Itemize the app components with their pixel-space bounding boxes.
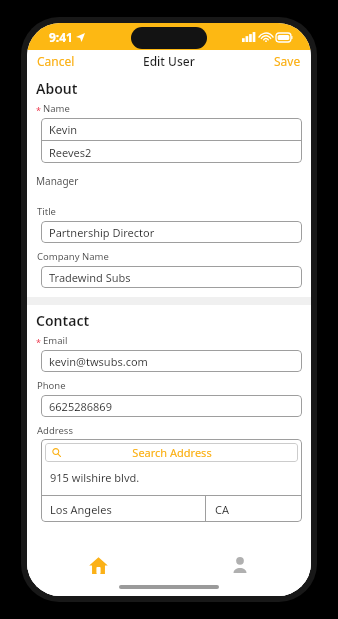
staticText: Partnership Director — [49, 225, 155, 240]
staticText: Reeves2 — [49, 145, 92, 160]
staticText: Phone — [37, 379, 66, 392]
button[interactable]: Save — [264, 51, 311, 71]
staticText: 915 wilshire blvd. — [50, 470, 140, 485]
staticText: 6625286869 — [49, 399, 112, 414]
staticText: Address — [37, 424, 73, 437]
staticText: Name — [43, 102, 70, 115]
staticText: About — [36, 79, 78, 98]
staticText: Manager — [36, 174, 79, 188]
button[interactable]: Home — [27, 548, 169, 582]
button[interactable]: kevin@twsubs.com — [41, 350, 302, 372]
staticText: Los Angeles — [50, 502, 112, 517]
button[interactable]: Tradewind Subs — [41, 266, 302, 288]
button[interactable]: Kevin — [41, 118, 302, 140]
staticText: Save — [274, 53, 301, 69]
staticText: Contact — [36, 311, 90, 330]
button[interactable]: Search Address — [45, 443, 298, 462]
staticText: * — [36, 336, 41, 348]
staticText: kevin@twsubs.com — [49, 354, 148, 369]
button[interactable]: Reeves2 — [41, 141, 302, 163]
button[interactable]: Profile — [169, 548, 311, 582]
staticText: Tradewind Subs — [49, 270, 131, 285]
staticText: Cancel — [37, 53, 75, 69]
button[interactable]: CA — [206, 496, 302, 522]
button[interactable]: 915 wilshire blvd. — [41, 466, 302, 495]
staticText: Title — [37, 205, 56, 218]
staticText: 9:41 — [49, 29, 73, 45]
button[interactable]: 6625286869 — [41, 395, 302, 417]
staticText: Kevin — [49, 122, 78, 137]
button[interactable]: Partnership Director — [41, 221, 302, 243]
staticText: Email — [43, 334, 68, 347]
staticText: Search Address — [132, 445, 212, 460]
staticText: Company Name — [37, 250, 109, 263]
button[interactable]: Los Angeles — [41, 496, 205, 522]
staticText: * — [36, 104, 41, 116]
staticText: Edit User — [143, 53, 195, 69]
staticText: CA — [215, 502, 229, 517]
button[interactable]: Cancel — [27, 51, 85, 71]
